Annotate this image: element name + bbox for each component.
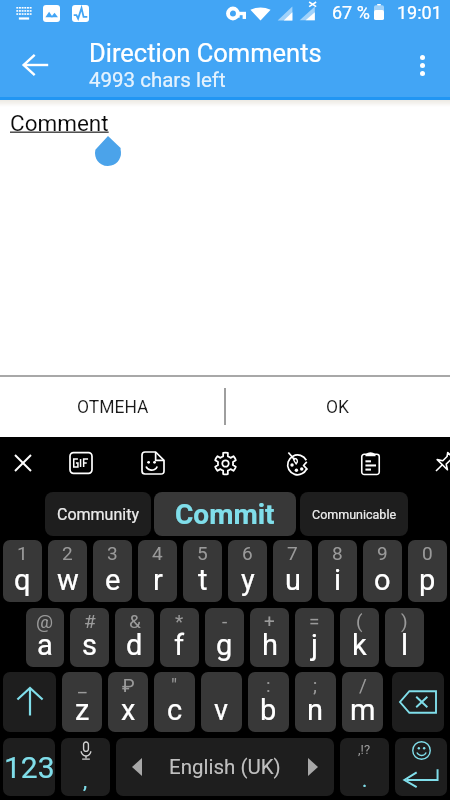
button[interactable]: Commit bbox=[154, 492, 296, 536]
button[interactable]: 1 bbox=[3, 540, 42, 602]
button[interactable]: 8 bbox=[318, 540, 357, 602]
button[interactable]: @ bbox=[26, 608, 64, 667]
button[interactable]: Theme bbox=[279, 444, 317, 482]
button[interactable]: 5 bbox=[183, 540, 222, 602]
button[interactable]: 2 bbox=[48, 540, 87, 602]
staticText: s bbox=[82, 628, 97, 662]
button[interactable]: ОТМЕНА bbox=[0, 377, 225, 437]
staticText: Communicable bbox=[312, 507, 397, 522]
button[interactable]: & bbox=[115, 608, 154, 667]
button[interactable]: Voice input bbox=[61, 738, 110, 796]
staticText: * bbox=[175, 610, 184, 632]
staticText: z bbox=[75, 693, 90, 727]
staticText: - bbox=[222, 610, 228, 632]
button[interactable]: GIF bbox=[62, 444, 100, 482]
button[interactable]: 6 bbox=[228, 540, 267, 602]
button[interactable]: Stickers bbox=[134, 444, 172, 482]
staticText: # bbox=[84, 610, 96, 632]
staticText: p bbox=[419, 563, 436, 597]
staticText: Community bbox=[57, 505, 139, 524]
button[interactable]: Period bbox=[340, 738, 389, 796]
staticText: r bbox=[153, 563, 163, 597]
staticText: . bbox=[362, 768, 368, 791]
staticText: e bbox=[105, 563, 121, 597]
button[interactable]: More options bbox=[398, 41, 446, 89]
staticText: t bbox=[198, 563, 208, 597]
staticText: 123 bbox=[4, 750, 55, 785]
button[interactable]: ( bbox=[340, 608, 379, 667]
button[interactable]: 0 bbox=[408, 540, 447, 602]
staticText: _ bbox=[78, 674, 87, 696]
staticText: ) bbox=[401, 610, 408, 632]
button[interactable]: 4 bbox=[138, 540, 177, 602]
button[interactable]: Communicable bbox=[300, 492, 408, 536]
staticText: w bbox=[57, 563, 79, 597]
staticText: = bbox=[309, 610, 320, 632]
button[interactable]: Shift bbox=[3, 672, 56, 732]
staticText: 2 bbox=[62, 542, 73, 564]
staticText: 9 bbox=[377, 542, 388, 564]
button[interactable]: Pin bbox=[425, 444, 450, 482]
staticText: v bbox=[214, 693, 229, 727]
staticText: , bbox=[83, 769, 88, 794]
button[interactable]: Community bbox=[45, 492, 151, 536]
button[interactable]: # bbox=[70, 608, 109, 667]
staticText: 7 bbox=[287, 542, 298, 564]
staticText: ОТМЕНА bbox=[77, 397, 149, 418]
button[interactable]: = bbox=[295, 608, 334, 667]
button[interactable]: Space bbox=[116, 738, 334, 796]
staticText: / bbox=[359, 674, 367, 696]
staticText: c bbox=[167, 693, 183, 727]
staticText: 3 bbox=[107, 542, 118, 564]
staticText: f bbox=[174, 628, 185, 662]
button[interactable]: OK bbox=[225, 377, 450, 437]
button[interactable]: 3 bbox=[93, 540, 132, 602]
button[interactable]: 9 bbox=[363, 540, 402, 602]
button[interactable]: + bbox=[250, 608, 289, 667]
staticText: x bbox=[121, 693, 136, 727]
staticText: y bbox=[241, 563, 255, 597]
staticText: English (UK) bbox=[169, 755, 281, 779]
staticText: b bbox=[260, 693, 277, 727]
staticText: 6 bbox=[242, 542, 253, 564]
button[interactable]: Backspace bbox=[392, 672, 444, 732]
button[interactable]: / bbox=[342, 672, 383, 732]
staticText: 4993 chars left bbox=[89, 68, 226, 92]
staticText: Direction Comments bbox=[89, 38, 322, 68]
button[interactable]: - bbox=[205, 608, 244, 667]
staticText: 0 bbox=[422, 542, 433, 564]
button[interactable]: Enter bbox=[395, 738, 447, 796]
staticText: o bbox=[374, 563, 391, 597]
button[interactable]: * bbox=[160, 608, 199, 667]
button[interactable]: v bbox=[201, 672, 242, 732]
staticText: a bbox=[37, 628, 53, 662]
staticText: n bbox=[307, 693, 324, 727]
staticText: d bbox=[126, 628, 143, 662]
staticText: h bbox=[262, 628, 278, 662]
staticText: OK bbox=[326, 397, 350, 418]
staticText: + bbox=[264, 610, 275, 632]
button[interactable]: ; bbox=[295, 672, 336, 732]
button[interactable]: Clipboard bbox=[351, 444, 389, 482]
staticText: i bbox=[334, 563, 342, 597]
staticText: k bbox=[352, 628, 367, 662]
staticText: ; bbox=[313, 674, 318, 696]
staticText: Commit bbox=[175, 498, 275, 531]
staticText: Comment bbox=[10, 110, 109, 136]
staticText: j bbox=[311, 628, 318, 662]
button[interactable]: _ bbox=[62, 672, 102, 732]
button[interactable]: " bbox=[154, 672, 195, 732]
staticText: : bbox=[266, 674, 271, 696]
button[interactable]: ₽ bbox=[108, 672, 148, 732]
button[interactable]: Symbols bbox=[3, 738, 55, 796]
button[interactable]: : bbox=[248, 672, 289, 732]
button[interactable]: Settings bbox=[206, 444, 244, 482]
button[interactable]: Close bbox=[4, 444, 42, 482]
button[interactable]: 7 bbox=[273, 540, 312, 602]
staticText: 19:01 bbox=[397, 2, 442, 23]
staticText: 67 % bbox=[332, 2, 370, 23]
button[interactable]: ) bbox=[385, 608, 424, 667]
staticText: q bbox=[14, 563, 31, 597]
staticText: m bbox=[350, 693, 376, 727]
button[interactable]: Navigate up bbox=[11, 41, 59, 89]
